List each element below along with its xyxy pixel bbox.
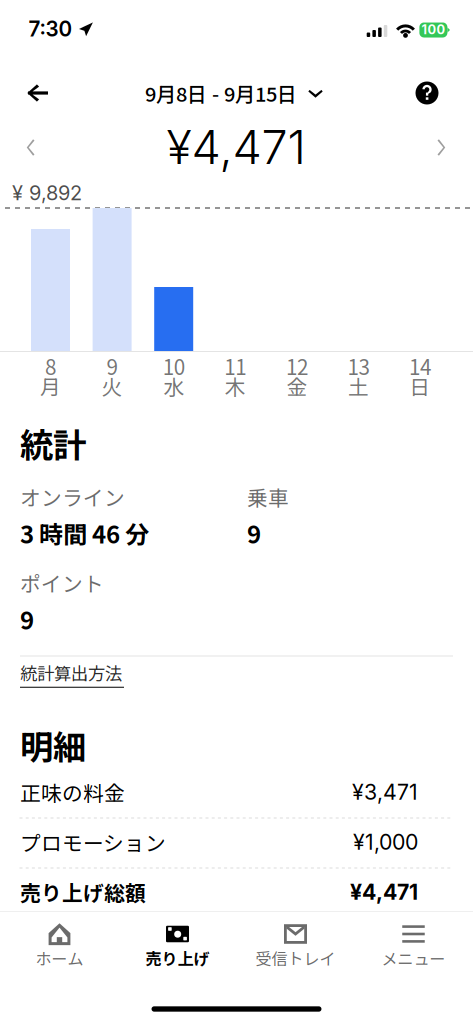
- staticText: 12: [286, 351, 308, 381]
- button[interactable]: Back: [15, 70, 61, 116]
- staticText: ¥ 9,892: [12, 181, 82, 205]
- button[interactable]: ホーム: [0, 912, 118, 980]
- staticText: 11: [224, 351, 246, 381]
- staticText: プロモーション: [20, 827, 166, 857]
- staticText: 土: [348, 371, 369, 401]
- staticText: 日: [410, 371, 431, 401]
- staticText: 水: [163, 371, 184, 401]
- button[interactable]: Help: [404, 70, 450, 116]
- staticText: 9: [247, 516, 261, 550]
- staticText: 8: [45, 351, 56, 381]
- staticText: 明細: [20, 721, 86, 769]
- staticText: ¥3,471: [352, 779, 418, 805]
- staticText: ¥1,000: [353, 829, 418, 855]
- staticText: 14: [409, 351, 431, 381]
- staticText: 統計: [20, 419, 86, 467]
- staticText: 売り上げ総額: [20, 877, 146, 907]
- staticText: ポイント: [20, 568, 104, 598]
- button[interactable]: 売り上げ: [118, 912, 236, 980]
- staticText: 3 時間 46 分: [20, 516, 149, 550]
- staticText: メニュー: [381, 946, 445, 970]
- staticText: 月: [40, 371, 61, 401]
- button[interactable]: 統計算出方法: [20, 654, 180, 694]
- staticText: 統計算出方法: [20, 660, 122, 685]
- staticText: 乗車: [247, 482, 289, 512]
- staticText: 9: [20, 602, 34, 636]
- staticText: 13: [347, 351, 369, 381]
- staticText: オンライン: [20, 482, 125, 512]
- staticText: 7:30: [28, 16, 72, 41]
- staticText: 正味の料金: [20, 777, 125, 807]
- staticText: 受信トレイ: [255, 946, 335, 970]
- staticText: ホーム: [35, 946, 83, 970]
- button[interactable]: Previous week: [10, 123, 54, 173]
- staticText: ¥4,471: [166, 119, 305, 175]
- staticText: ¥4,471: [350, 879, 418, 905]
- staticText: 火: [102, 371, 123, 401]
- staticText: 9月8日 - 9月15日: [145, 78, 297, 107]
- staticText: 木: [225, 371, 246, 401]
- staticText: 100: [421, 22, 445, 37]
- button[interactable]: Next week: [419, 123, 463, 173]
- staticText: 10: [163, 351, 185, 381]
- button[interactable]: 9月8日 - 9月15日: [145, 70, 323, 116]
- staticText: 売り上げ: [145, 946, 209, 970]
- button[interactable]: メニュー: [354, 912, 472, 980]
- staticText: 金: [286, 371, 307, 401]
- staticText: 9: [107, 351, 118, 381]
- button[interactable]: 受信トレイ: [236, 912, 354, 980]
